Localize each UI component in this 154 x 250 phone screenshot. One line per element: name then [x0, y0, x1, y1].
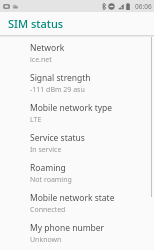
staticText: ice.net [30, 55, 52, 65]
staticText: Connected [30, 205, 66, 215]
staticText: Mobile network state [30, 192, 115, 204]
staticText: My phone number [30, 222, 105, 234]
staticText: Service status [30, 132, 85, 144]
button[interactable]: Signal strength [0, 68, 154, 98]
staticText: Signal strength [30, 72, 91, 84]
staticText: -111 dBm 29 asu [30, 85, 85, 95]
button[interactable]: Mobile network state [0, 188, 154, 218]
staticText: Network [30, 42, 65, 54]
staticText: Not roaming [30, 175, 72, 185]
staticText: Unknown [30, 235, 62, 245]
staticText: Mobile network type [30, 102, 113, 114]
button[interactable]: Mobile network type [0, 98, 154, 128]
button[interactable]: Service status [0, 128, 154, 158]
staticText: SIM status [8, 16, 64, 31]
button[interactable]: Network [0, 38, 154, 68]
staticText: LTE [30, 115, 42, 125]
staticText: Roaming [30, 162, 66, 174]
staticText: 06:06 [135, 2, 152, 11]
staticText: In service [30, 145, 62, 155]
button[interactable]: Roaming [0, 158, 154, 188]
button[interactable]: My phone number [0, 218, 154, 248]
